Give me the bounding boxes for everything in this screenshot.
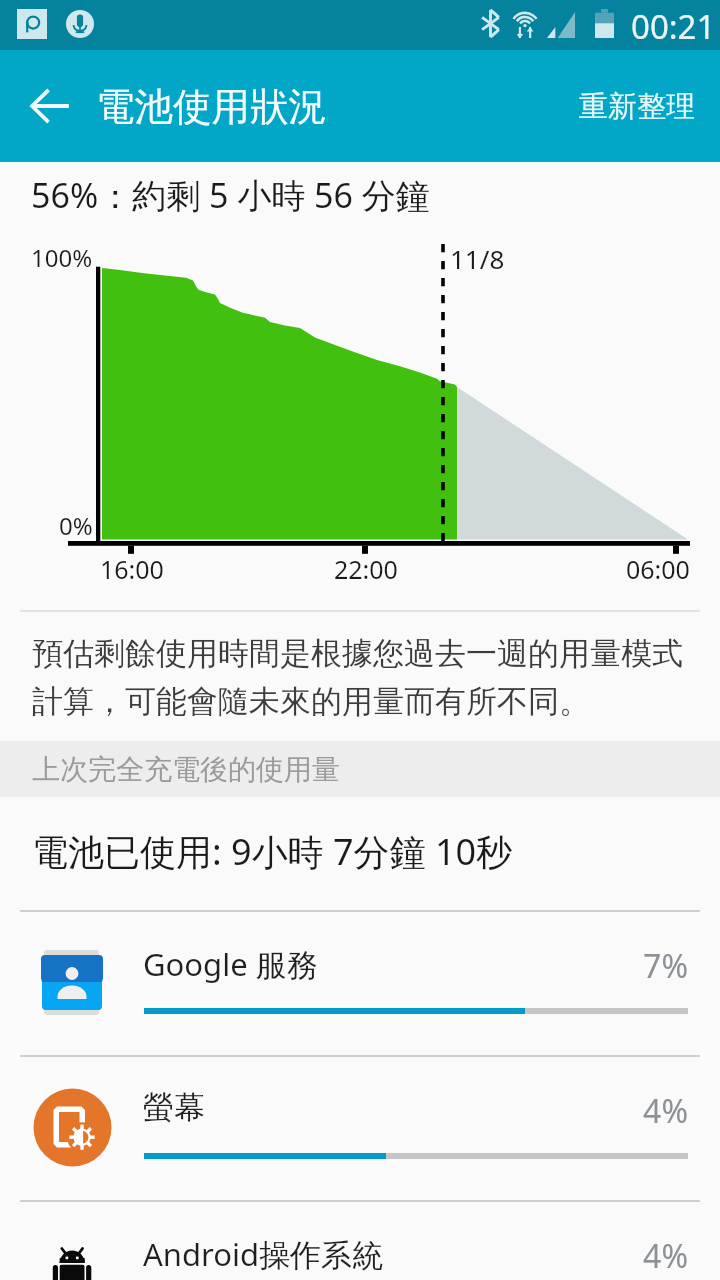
- staticText: 螢幕: [143, 1088, 205, 1127]
- button[interactable]: Android操作系統: [0, 1200, 720, 1280]
- staticText: 22:00: [334, 552, 398, 586]
- staticText: 電池使用狀況: [96, 83, 327, 132]
- staticText: 4%: [0, 1234, 688, 1278]
- staticText: 電池已使用: 9小時 7分鐘 10秒: [32, 827, 513, 876]
- staticText: 重新整理: [579, 88, 695, 125]
- staticText: 預估剩餘使用時間是根據您過去一週的用量模式計算，可能會隨未來的用量而有所不同。: [32, 634, 700, 721]
- staticText: 06:00: [626, 552, 690, 586]
- staticText: 00:21: [631, 4, 716, 49]
- button[interactable]: Google 服務: [0, 910, 720, 1055]
- staticText: 上次完全充電後的使用量: [32, 752, 340, 787]
- staticText: 0%: [59, 509, 93, 542]
- staticText: Google 服務: [143, 943, 318, 985]
- button[interactable]: Back: [0, 50, 97, 162]
- button[interactable]: 重新整理: [555, 50, 720, 162]
- staticText: 16:00: [100, 552, 164, 586]
- staticText: Android操作系統: [143, 1233, 384, 1275]
- staticText: 100%: [31, 241, 93, 274]
- button[interactable]: 螢幕: [0, 1055, 720, 1200]
- staticText: 7%: [0, 944, 688, 988]
- staticText: 4%: [0, 1089, 688, 1133]
- staticText: 56%：約剩 5 小時 56 分鐘: [31, 172, 430, 218]
- staticText: 11/8: [450, 241, 505, 276]
